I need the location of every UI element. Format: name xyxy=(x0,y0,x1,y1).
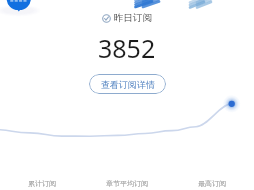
staticText: 昨日订阅 xyxy=(114,12,152,24)
staticText: 查看订阅详情 xyxy=(101,79,155,90)
staticText: 累计订阅 xyxy=(28,179,56,188)
staticText: 3852 xyxy=(98,31,156,65)
button[interactable]: 查看订阅详情 xyxy=(89,74,166,94)
staticText: 章节平均订阅 xyxy=(106,179,148,188)
staticText: 最高订阅 xyxy=(198,179,226,188)
